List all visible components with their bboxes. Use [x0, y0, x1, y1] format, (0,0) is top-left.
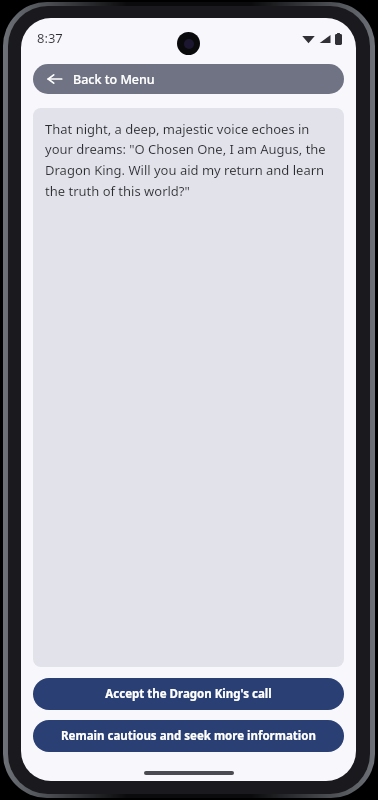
staticText: Accept the Dragon King's call [105, 686, 272, 702]
button[interactable]: Back [33, 64, 344, 94]
button[interactable]: Accept the Dragon King's call [33, 678, 344, 710]
staticText: That night, a deep, majestic voice echoe… [45, 120, 332, 200]
staticText: Back to Menu [73, 71, 155, 88]
staticText: 8:37 [37, 29, 63, 47]
staticText: Remain cautious and seek more informatio… [61, 728, 316, 744]
other: Back [47, 71, 63, 87]
button[interactable]: Remain cautious and seek more informatio… [33, 720, 344, 752]
